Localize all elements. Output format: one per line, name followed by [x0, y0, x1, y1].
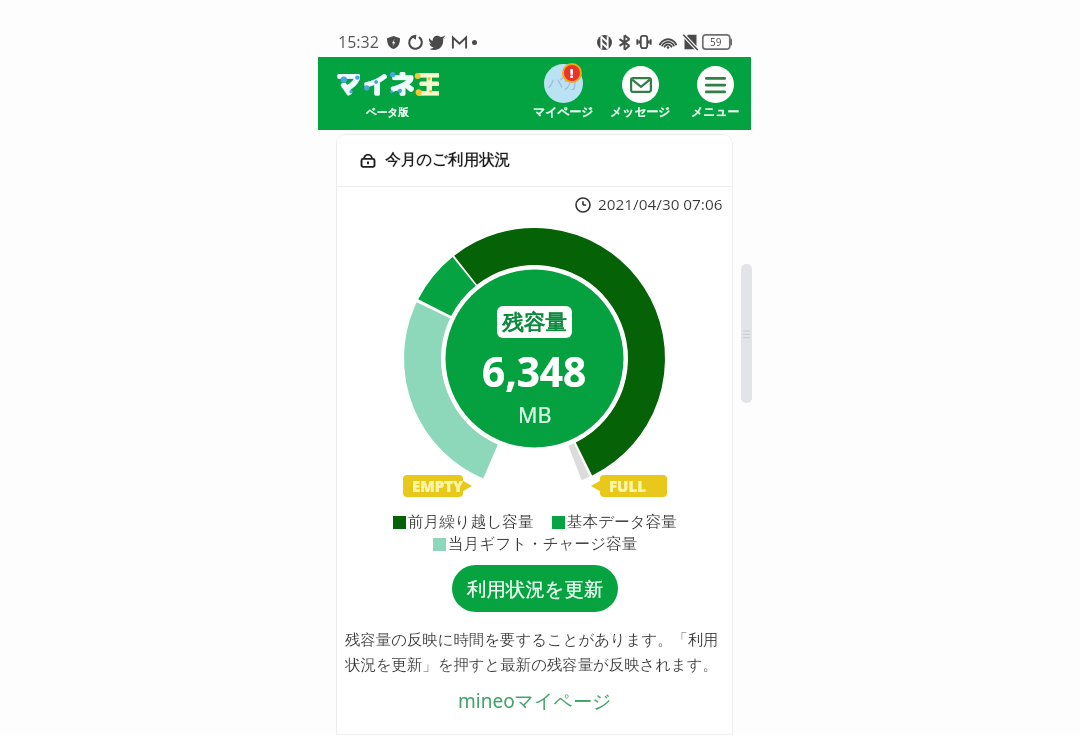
staticText: マイページ — [533, 105, 594, 120]
staticText: 6,348 — [482, 344, 587, 394]
button[interactable]: mineoマイページ — [450, 686, 620, 716]
button[interactable]: メニュー — [691, 63, 740, 120]
staticText: マイネ — [335, 65, 416, 102]
staticText: ベータ版 — [366, 106, 409, 119]
staticText: 基本データ容量 — [567, 512, 677, 532]
staticText: 当月ギフト・チャージ容量 — [448, 534, 638, 554]
staticText: 残容量の反映に時間を要することがあります。「利用状況を更新」を押すと最新の残容量… — [345, 630, 726, 674]
staticText: 前月繰り越し容量 — [408, 512, 534, 532]
staticText: 15:32 — [338, 31, 379, 53]
button[interactable]: マイネ王 ホーム — [335, 65, 439, 119]
staticText: 王 — [416, 65, 439, 102]
button[interactable]: マイページ — [533, 63, 594, 120]
staticText: 2021/04/30 07:06 — [598, 194, 723, 215]
staticText: ! — [570, 65, 574, 81]
staticText: メニュー — [691, 105, 740, 120]
staticText: 59 — [710, 35, 722, 49]
staticText: MB — [518, 400, 552, 429]
staticText: バカ — [548, 74, 579, 93]
button[interactable]: メッセージ — [610, 63, 671, 120]
staticText: FULL — [609, 476, 646, 496]
staticText: mineoマイページ — [458, 688, 612, 714]
button[interactable]: 利用状況を更新 — [452, 565, 618, 612]
staticText: EMPTY — [412, 476, 464, 496]
staticText: 利用状況を更新 — [467, 577, 604, 601]
staticText: 今月のご利用状況 — [385, 150, 510, 170]
staticText: メッセージ — [610, 105, 671, 120]
staticText: 残容量 — [502, 309, 567, 336]
